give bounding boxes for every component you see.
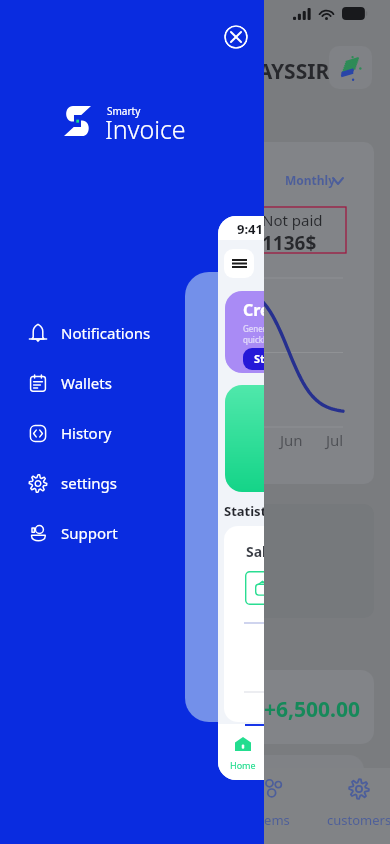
staticText: TAYSSIR [247, 57, 330, 86]
staticText: Star [254, 351, 264, 366]
staticText: Crea [243, 299, 264, 321]
staticText: Support [61, 523, 118, 543]
button[interactable]: Home [230, 737, 256, 771]
button[interactable]: Star [243, 348, 264, 370]
staticText: Wallets [61, 373, 112, 393]
staticText: Monthly [285, 172, 336, 188]
button[interactable]: invoices [144, 768, 230, 829]
staticText: History [61, 423, 112, 443]
button[interactable]: settings [0, 458, 264, 508]
button[interactable]: Support [0, 508, 264, 558]
staticText: Notifications [61, 323, 151, 343]
staticText: Jun [280, 430, 303, 450]
staticText: 1136$ [262, 230, 317, 253]
button[interactable]: Notifications [0, 308, 264, 358]
button[interactable]: items [230, 768, 316, 829]
staticText: Smarty [107, 104, 141, 118]
button[interactable]: Profile [329, 46, 372, 89]
staticText: Invoice [105, 112, 186, 146]
staticText: Jul [326, 430, 344, 450]
staticText: 9:41 [237, 220, 263, 238]
staticText: Not paid [262, 210, 323, 230]
button[interactable]: Close drawer [224, 25, 248, 49]
button[interactable]: Wallets [0, 358, 264, 408]
staticText: Genera quickly [243, 323, 264, 345]
staticText: customers [327, 811, 390, 829]
staticText: Statistic [224, 502, 264, 520]
staticText: settings [61, 473, 118, 493]
staticText: Home [230, 759, 256, 771]
button[interactable]: History [0, 408, 264, 458]
button[interactable]: Menu [224, 249, 254, 278]
staticText: Sale [246, 542, 264, 561]
staticText: 12,500$+6,500.00 [186, 695, 361, 724]
button[interactable]: customers [316, 768, 390, 829]
staticText: items [256, 811, 290, 829]
